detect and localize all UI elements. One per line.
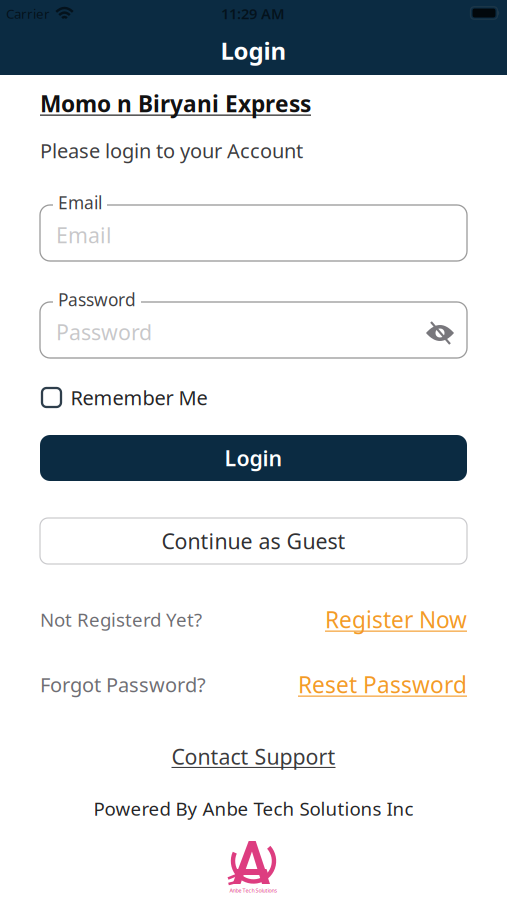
- staticText: Email: [58, 191, 102, 214]
- button[interactable]: Login: [40, 435, 467, 481]
- staticText: Anbe Tech Solutions: [229, 887, 277, 894]
- button[interactable]: Show password: [418, 316, 462, 350]
- staticText: Reset Password: [298, 669, 467, 699]
- staticText: Login: [220, 35, 286, 66]
- staticText: Momo n Biryani Express: [40, 88, 311, 118]
- staticText: Contact Support: [171, 742, 335, 771]
- staticText: Forgot Password?: [40, 671, 206, 698]
- button[interactable]: Contact Support: [171, 742, 335, 771]
- staticText: Password: [56, 318, 152, 346]
- button[interactable]: Remember Me: [42, 384, 207, 411]
- staticText: Continue as Guest: [161, 527, 345, 555]
- button[interactable]: Continue as Guest: [40, 518, 467, 564]
- button[interactable]: Reset Password: [298, 669, 467, 699]
- staticText: Email: [56, 221, 112, 249]
- staticText: Please login to your Account: [40, 137, 303, 164]
- staticText: 11:29 AM: [221, 4, 285, 23]
- staticText: Password: [58, 288, 136, 311]
- staticText: Login: [224, 444, 282, 472]
- staticText: Not Registerd Yet?: [40, 607, 202, 632]
- staticText: Powered By Anbe Tech Solutions Inc: [93, 796, 413, 821]
- button[interactable]: Register Now: [325, 604, 467, 634]
- staticText: Remember Me: [70, 384, 207, 411]
- staticText: Carrier: [6, 5, 50, 22]
- staticText: Register Now: [325, 604, 467, 634]
